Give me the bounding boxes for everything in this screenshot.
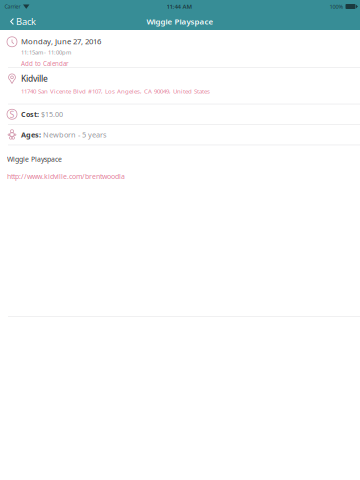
- staticText: Wiggle Playspace: [146, 16, 213, 27]
- staticText: 11:15am - 11:00pm: [21, 48, 71, 56]
- button[interactable]: http://www.kidville.com/brentwoodla: [7, 172, 125, 181]
- button[interactable]: Back: [0, 13, 42, 30]
- staticText: Newborn - 5 years: [41, 130, 107, 140]
- staticText: Kidville: [21, 73, 48, 84]
- staticText: 11:44 AM: [166, 2, 192, 11]
- staticText: $15.00: [39, 109, 63, 119]
- staticText: Wiggle Playspace: [7, 154, 62, 164]
- staticText: Cost:: [21, 109, 39, 119]
- staticText: Carrier: [4, 3, 20, 10]
- staticText: S: [9, 108, 14, 120]
- staticText: Ages:: [21, 130, 41, 140]
- staticText: 11740 San Vicente Blvd #107, Los Angeles…: [21, 87, 210, 95]
- staticText: 100%: [329, 3, 343, 10]
- staticText: Add to Calendar: [21, 59, 69, 68]
- staticText: http://www.kidville.com/brentwoodla: [7, 172, 125, 181]
- staticText: Monday, June 27, 2016: [21, 36, 101, 46]
- button[interactable]: Add to Calendar: [21, 59, 69, 68]
- staticText: Back: [16, 15, 36, 28]
